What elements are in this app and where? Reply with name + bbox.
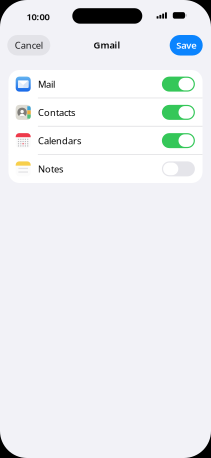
- staticText: Save: [176, 39, 196, 51]
- button[interactable]: Cancel: [7, 35, 50, 55]
- staticText: Gmail: [94, 39, 121, 51]
- staticText: Mail: [38, 78, 55, 90]
- staticText: Contacts: [38, 106, 75, 119]
- button[interactable]: Mail: [162, 77, 195, 92]
- button[interactable]: Save: [170, 35, 203, 55]
- button[interactable]: Calendars: [162, 133, 195, 148]
- staticText: 10:00: [27, 10, 50, 23]
- button[interactable]: Notes: [162, 161, 195, 176]
- button[interactable]: Contacts: [162, 105, 195, 120]
- staticText: Cancel: [15, 39, 43, 51]
- staticText: Notes: [38, 163, 63, 175]
- staticText: Calendars: [38, 134, 81, 147]
